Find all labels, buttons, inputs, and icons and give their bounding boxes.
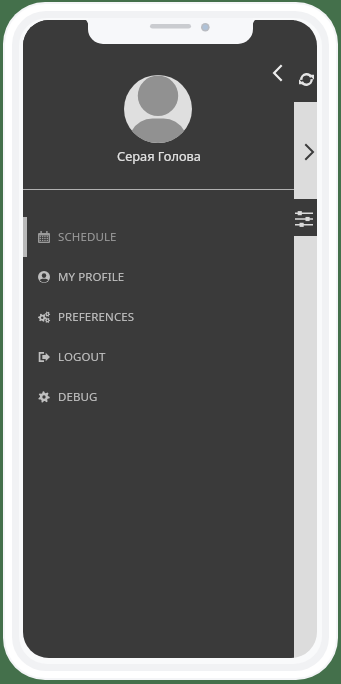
staticText: LOGOUT — [58, 349, 106, 365]
staticText: DEBUG — [58, 389, 98, 405]
staticText: Серая Голова — [117, 147, 201, 164]
button[interactable]: LOGOUT — [23, 337, 294, 377]
staticText: SCHEDULE — [58, 229, 117, 245]
staticText: MY PROFILE — [58, 269, 125, 285]
button[interactable]: Refresh — [288, 61, 317, 98]
staticText: PREFERENCES — [58, 309, 135, 325]
button[interactable]: Back — [263, 59, 291, 87]
button[interactable]: MY PROFILE — [23, 257, 294, 297]
button[interactable]: SCHEDULE — [23, 217, 294, 257]
button[interactable]: Open — [271, 132, 317, 172]
button[interactable]: PREFERENCES — [23, 297, 294, 337]
button[interactable]: DEBUG — [23, 377, 294, 417]
button[interactable]: Filters — [286, 199, 317, 236]
